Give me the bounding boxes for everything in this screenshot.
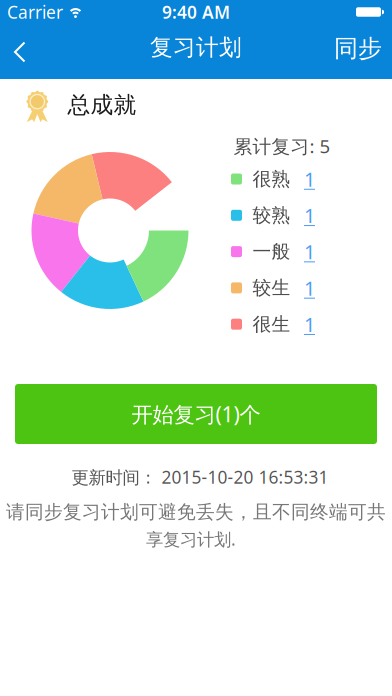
- button[interactable]: Back: [0, 27, 39, 77]
- staticText: 很生: [252, 313, 290, 336]
- staticText: 1: [304, 275, 315, 301]
- button[interactable]: 1: [304, 275, 315, 301]
- staticText: 总成就: [67, 91, 136, 119]
- staticText: 较熟: [252, 204, 290, 227]
- staticText: 同步: [334, 34, 382, 63]
- button[interactable]: 1: [304, 166, 315, 192]
- staticText: 复习计划: [150, 34, 242, 61]
- button[interactable]: 开始复习(1)个: [15, 384, 377, 444]
- staticText: 一般: [252, 240, 290, 263]
- button[interactable]: 1: [304, 311, 315, 337]
- staticText: 很熟: [252, 167, 290, 190]
- button[interactable]: 同步: [322, 22, 392, 75]
- staticText: 请同步复习计划可避免丢失，且不同终端可共: [6, 500, 386, 523]
- staticText: 9:40 AM: [162, 0, 230, 23]
- staticText: 享复习计划.: [146, 527, 236, 550]
- staticText: 开始复习(1)个: [131, 400, 260, 428]
- staticText: 较生: [252, 276, 290, 299]
- staticText: Carrier: [7, 0, 63, 23]
- staticText: 更新时间： 2015-10-20 16:53:31: [71, 465, 328, 488]
- staticText: 1: [304, 238, 315, 265]
- staticText: 累计复习: 5: [233, 134, 330, 158]
- button[interactable]: 1: [304, 238, 315, 265]
- staticText: 1: [304, 311, 315, 337]
- staticText: 1: [304, 166, 315, 192]
- staticText: 1: [304, 202, 315, 229]
- button[interactable]: 1: [304, 202, 315, 229]
